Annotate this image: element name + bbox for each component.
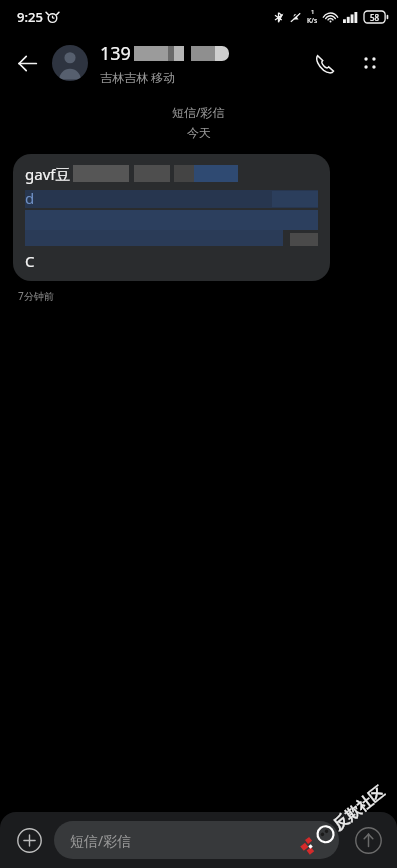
button[interactable]: Send <box>349 821 387 859</box>
button[interactable]: Back <box>4 40 50 86</box>
button[interactable]: 短信/彩信 <box>54 821 339 859</box>
staticText: 吉林吉林 移动 <box>100 69 176 85</box>
staticText: 短信/彩信 <box>172 104 225 120</box>
staticText: d <box>25 188 35 208</box>
staticText: K/s <box>307 16 318 26</box>
button[interactable]: gavf豆 <box>13 154 330 281</box>
button[interactable]: 139 <box>100 41 301 85</box>
staticText: 1 <box>311 8 315 16</box>
staticText: 短信/彩信 <box>70 831 132 850</box>
button[interactable]: Call <box>301 40 347 86</box>
staticText: gavf豆 <box>25 164 71 184</box>
staticText: 今天 <box>187 125 211 140</box>
staticText: 9:25 <box>17 8 43 26</box>
staticText: C <box>25 251 35 271</box>
staticText: 反欺社区 <box>329 783 388 835</box>
button[interactable]: More options <box>347 40 393 86</box>
button[interactable]: Add attachment <box>10 821 48 859</box>
staticText: 7分钟前 <box>18 289 54 303</box>
staticText: 139 <box>100 41 131 66</box>
button[interactable] <box>52 45 88 81</box>
staticText: 58 <box>370 12 380 23</box>
